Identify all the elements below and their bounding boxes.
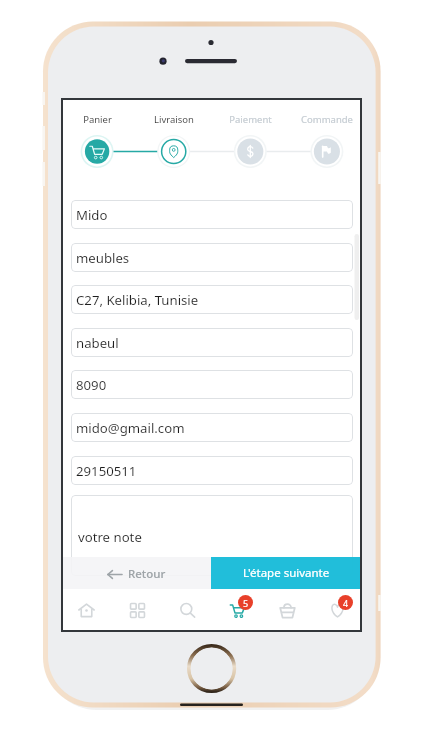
staticText: 8090 (76, 376, 107, 394)
staticText: Mido (76, 206, 108, 224)
staticText: mido@gmail.com (76, 419, 185, 437)
staticText: Paiement (229, 113, 272, 126)
staticText: Panier (83, 113, 112, 126)
staticText: meubles (76, 249, 130, 267)
button[interactable]: Panier (57, 111, 137, 128)
button[interactable]: Retour (61, 559, 212, 589)
button[interactable]: L'étape suivante (211, 557, 361, 589)
button[interactable]: votre note (71, 495, 353, 576)
staticText: Commande (301, 113, 353, 126)
button[interactable]: Paiement (210, 111, 290, 128)
button[interactable]: 29150511 (71, 456, 353, 485)
button[interactable]: Home (61, 589, 112, 632)
staticText: L'étape suivante (243, 565, 330, 581)
button[interactable]: nabeul (71, 328, 353, 357)
button[interactable]: Mido (71, 200, 353, 229)
button[interactable]: meubles (71, 243, 353, 272)
staticText: votre note (78, 528, 142, 546)
button[interactable]: mido@gmail.com (71, 413, 353, 442)
staticText: 29150511 (76, 462, 137, 480)
button[interactable]: C27, Kelibia, Tunisie (71, 285, 353, 314)
staticText: 5 (243, 597, 249, 609)
button[interactable]: Livraison (134, 111, 214, 128)
button[interactable]: Orders (262, 589, 312, 632)
button[interactable]: Search (162, 589, 212, 632)
staticText: 4 (343, 597, 349, 609)
button[interactable]: Commande (287, 111, 367, 128)
staticText: Livraison (154, 113, 194, 126)
staticText: nabeul (76, 334, 119, 352)
button[interactable]: 8090 (71, 370, 353, 399)
staticText: Retour (128, 566, 166, 582)
staticText: C27, Kelibia, Tunisie (76, 291, 199, 309)
button[interactable]: Cart (212, 589, 262, 632)
button[interactable]: Categories (112, 589, 162, 632)
button[interactable]: Favourites (312, 589, 362, 632)
